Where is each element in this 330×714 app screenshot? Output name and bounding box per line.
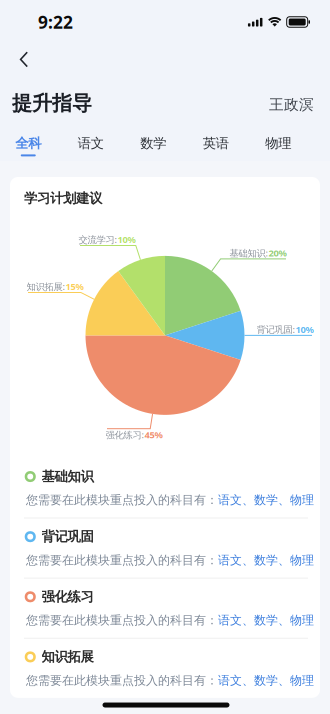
staticText: 知识拓展: — [26, 280, 65, 293]
staticText: 英语 — [203, 135, 229, 151]
staticText: 数学 — [140, 135, 166, 151]
button[interactable]: 背记巩固 — [10, 518, 320, 578]
button[interactable]: 基础知识 — [10, 458, 320, 517]
staticText: 强化练习: — [105, 428, 144, 441]
staticText: 语文 — [78, 135, 104, 151]
staticText: 基础知识: — [229, 247, 268, 259]
button[interactable]: 英语 — [184, 135, 247, 156]
staticText: 您需要在此模块重点投入的科目有： — [26, 553, 218, 568]
staticText: 语文、数学、物理 — [218, 493, 314, 507]
button[interactable]: 语文 — [59, 135, 122, 156]
staticText: 语文、数学、物理 — [218, 553, 314, 568]
staticText: 您需要在此模块重点投入的科目有： — [26, 613, 218, 628]
staticText: 10% — [295, 323, 313, 336]
button[interactable]: 物理 — [247, 135, 309, 156]
staticText: 全科 — [15, 135, 41, 151]
staticText: 您需要在此模块重点投入的科目有： — [26, 493, 218, 507]
staticText: 知识拓展 — [41, 649, 93, 665]
staticText: 语文、数学、物理 — [218, 673, 314, 688]
button[interactable]: 全科 — [0, 135, 59, 156]
button[interactable]: 知识拓展 — [10, 639, 320, 698]
staticText: 您需要在此模块重点投入的科目有： — [26, 673, 218, 688]
staticText: 学习计划建议 — [24, 190, 102, 206]
staticText: 强化练习 — [41, 589, 93, 605]
button[interactable]: 王政溟 — [269, 95, 314, 115]
staticText: 提升指导 — [12, 91, 92, 116]
staticText: 9:22 — [38, 10, 73, 33]
button[interactable]: Back — [0, 0, 43, 74]
staticText: 物理 — [265, 135, 291, 151]
staticText: 10% — [117, 233, 135, 246]
staticText: 15% — [65, 280, 83, 293]
button[interactable]: 数学 — [122, 135, 184, 156]
staticText: 背记巩固: — [256, 323, 295, 336]
staticText: 王政溟 — [269, 95, 314, 113]
staticText: 背记巩固 — [41, 528, 93, 545]
staticText: 45% — [144, 428, 162, 441]
button[interactable]: 强化练习 — [10, 579, 320, 638]
staticText: 基础知识 — [41, 468, 93, 485]
staticText: 语文、数学、物理 — [218, 613, 314, 628]
staticText: 20% — [268, 247, 286, 259]
staticText: 交流学习: — [78, 233, 117, 246]
